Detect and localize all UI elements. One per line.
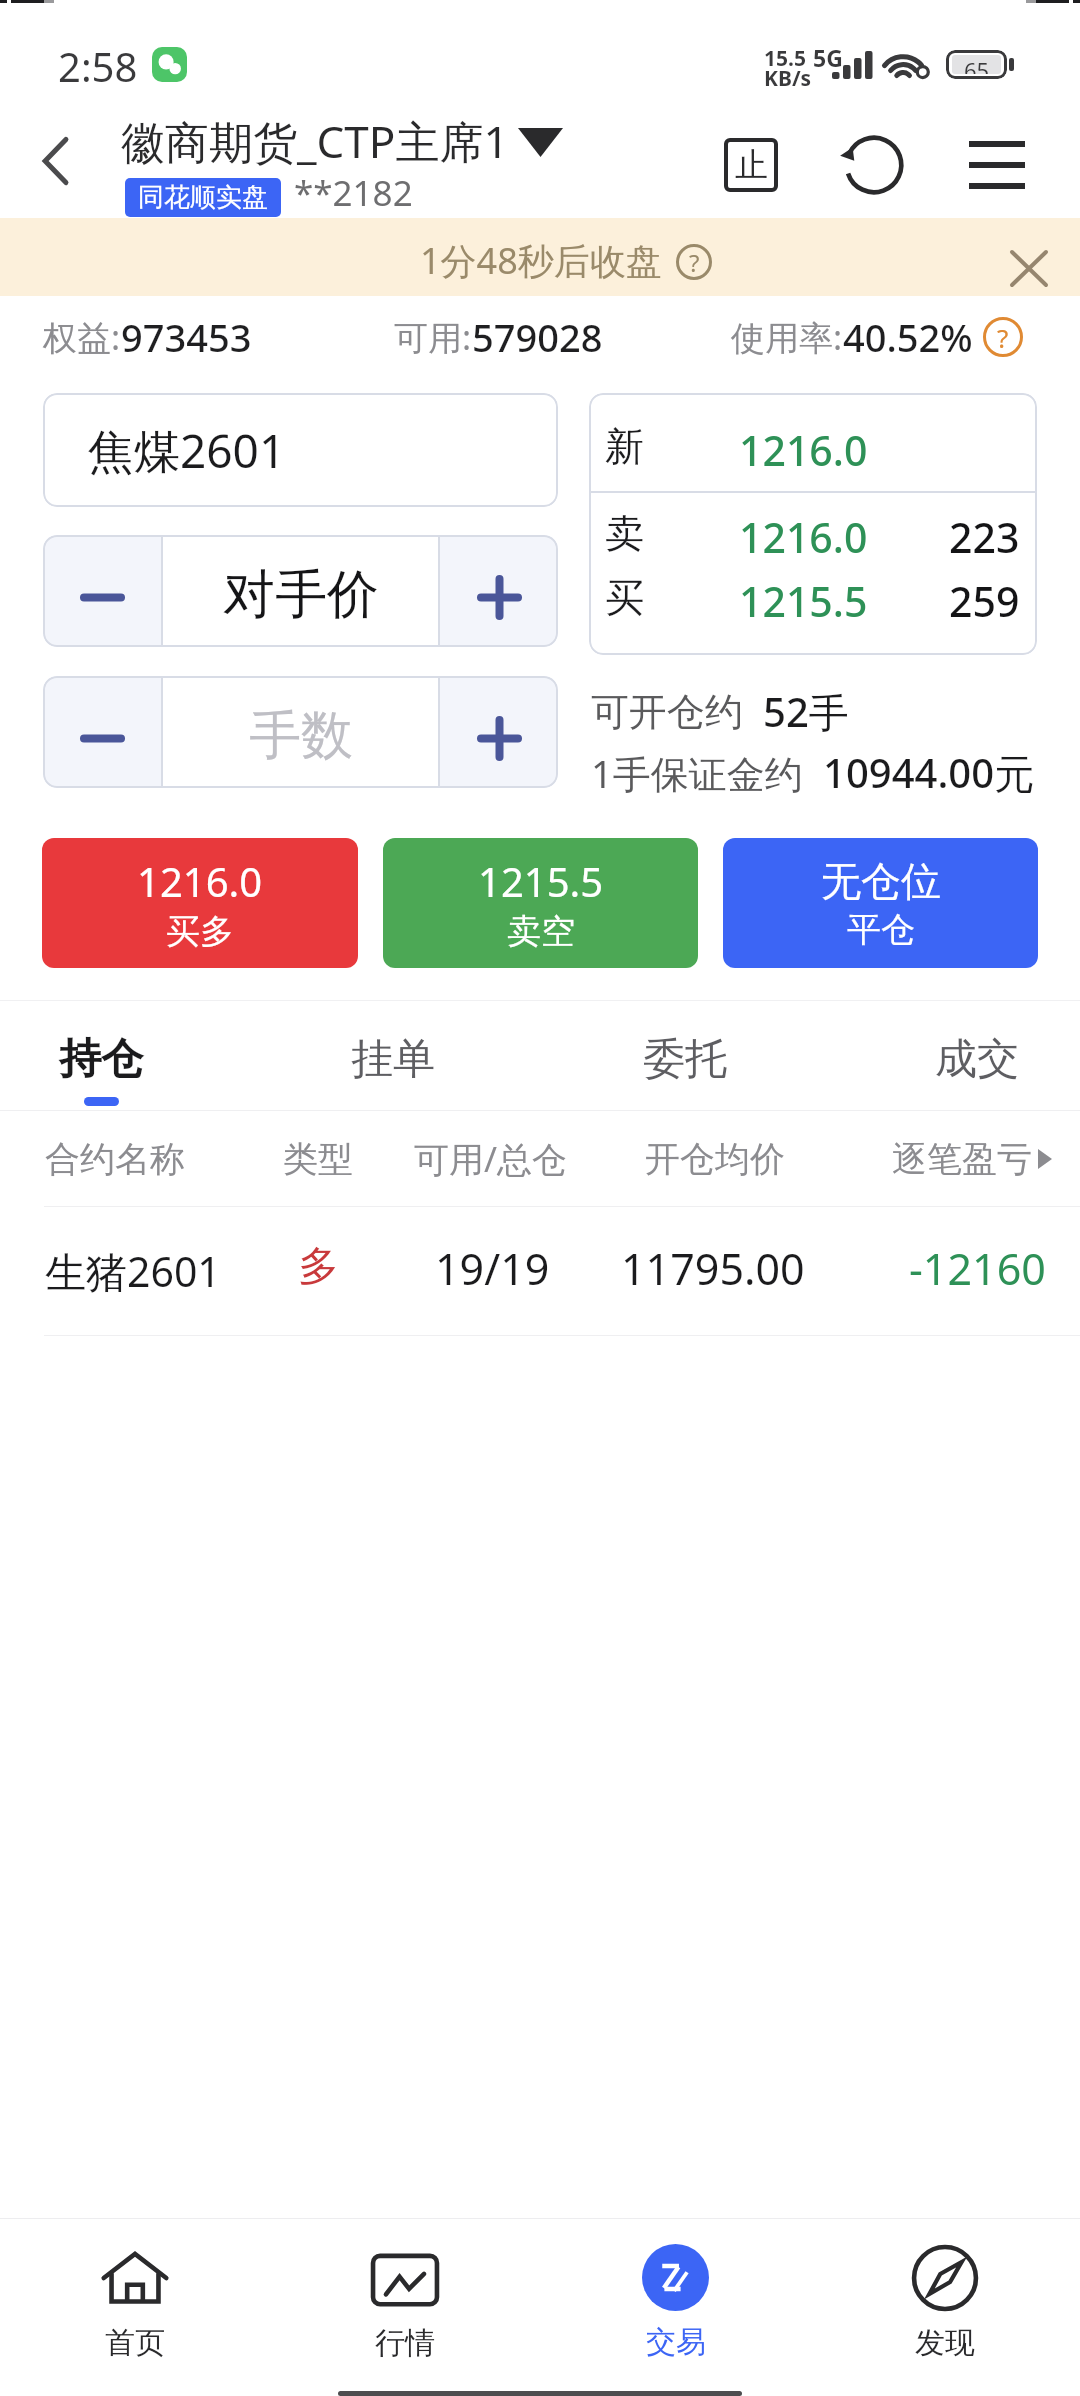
- staticText: 止: [735, 144, 768, 186]
- staticText: 同花顺实盘: [138, 181, 268, 214]
- staticText: 合约名称: [45, 1137, 185, 1181]
- button[interactable]: 持仓: [0, 1001, 247, 1111]
- button[interactable]: 发现: [810, 2219, 1080, 2386]
- staticText: 委托: [643, 1033, 727, 1086]
- button[interactable]: 委托: [539, 1001, 831, 1111]
- staticText: 开仓均价: [645, 1137, 785, 1181]
- staticText: 行情: [375, 2324, 435, 2362]
- button[interactable]: Refresh: [814, 103, 934, 218]
- staticText: KB/s: [764, 64, 812, 93]
- staticText: 卖空: [507, 910, 575, 953]
- staticText: 52手: [763, 684, 849, 739]
- staticText: -12160: [909, 1239, 1046, 1298]
- button[interactable]: 成交: [831, 1001, 1080, 1111]
- button[interactable]: 手数: [163, 676, 438, 788]
- staticText: 可开仓约: [591, 688, 743, 736]
- button[interactable]: 对手价: [163, 535, 438, 647]
- button[interactable]: Stop loss order: [695, 103, 807, 218]
- button[interactable]: 1215.5: [383, 838, 698, 968]
- staticText: 1手保证金约: [591, 747, 803, 799]
- staticText: 类型: [283, 1137, 353, 1181]
- staticText: 首页: [105, 2324, 165, 2362]
- staticText: 新: [605, 422, 644, 468]
- staticText: 挂单: [351, 1033, 435, 1086]
- staticText: 交易: [646, 2323, 706, 2361]
- staticText: 可用:: [394, 314, 472, 360]
- staticText: 生猪2601: [45, 1243, 221, 1299]
- staticText: 40.52%: [843, 311, 973, 363]
- staticText: 2:58: [58, 39, 138, 93]
- staticText: 无仓位: [821, 856, 941, 906]
- staticText: 成交: [935, 1033, 1019, 1086]
- staticText: 发现: [915, 2324, 975, 2362]
- staticText: 1216.0: [739, 422, 868, 468]
- button[interactable]: Increase: [440, 676, 558, 788]
- button[interactable]: 首页: [0, 2219, 270, 2386]
- staticText: ?: [997, 320, 1009, 355]
- staticText: 15.5: [764, 44, 806, 73]
- staticText: 579028: [472, 311, 603, 363]
- button[interactable]: Increase: [440, 535, 558, 647]
- staticText: 223: [949, 509, 1020, 555]
- staticText: 权益:: [43, 314, 121, 360]
- staticText: 对手价: [223, 562, 379, 628]
- button[interactable]: 焦煤2601: [43, 393, 558, 507]
- staticText: **2182: [294, 169, 413, 217]
- staticText: 19/19: [435, 1239, 550, 1298]
- staticText: 持仓: [59, 1033, 143, 1086]
- staticText: 973453: [121, 311, 252, 363]
- staticText: 可用/总仓: [414, 1135, 568, 1183]
- button[interactable]: 交易: [540, 2219, 810, 2386]
- staticText: 11795.00: [621, 1239, 805, 1298]
- staticText: 逐笔盈亏: [892, 1137, 1032, 1181]
- button[interactable]: Back: [0, 103, 110, 218]
- button[interactable]: Menu: [942, 103, 1052, 218]
- button[interactable]: Close banner: [983, 218, 1079, 296]
- staticText: 徽商期货_CTP主席1: [121, 111, 509, 171]
- staticText: 买: [605, 573, 644, 619]
- staticText: 手数: [249, 703, 353, 769]
- staticText: 1216.0: [739, 509, 868, 555]
- button[interactable]: 行情: [270, 2219, 540, 2386]
- staticText: 259: [949, 573, 1020, 619]
- staticText: 卖: [605, 509, 644, 555]
- staticText: ?: [689, 246, 700, 279]
- staticText: 10944.00元: [823, 745, 1035, 800]
- staticText: 焦煤2601: [88, 419, 286, 482]
- button[interactable]: 无仓位: [723, 838, 1038, 968]
- staticText: 1215.5: [478, 854, 604, 908]
- staticText: 平仓: [847, 908, 915, 951]
- staticText: 1215.5: [739, 573, 868, 619]
- button[interactable]: 1216.0: [42, 838, 358, 968]
- staticText: 1分48秒后收盘: [420, 236, 662, 285]
- staticText: 5G: [813, 42, 843, 73]
- button[interactable]: Decrease: [43, 535, 161, 647]
- staticText: 65: [964, 55, 990, 74]
- staticText: 多: [298, 1241, 339, 1293]
- button[interactable]: 挂单: [247, 1001, 539, 1111]
- staticText: 使用率:: [731, 314, 843, 360]
- button[interactable]: Decrease: [43, 676, 161, 788]
- staticText: 买多: [166, 910, 234, 953]
- button[interactable]: 生猪2601: [0, 1207, 1080, 1336]
- staticText: 1216.0: [137, 854, 263, 908]
